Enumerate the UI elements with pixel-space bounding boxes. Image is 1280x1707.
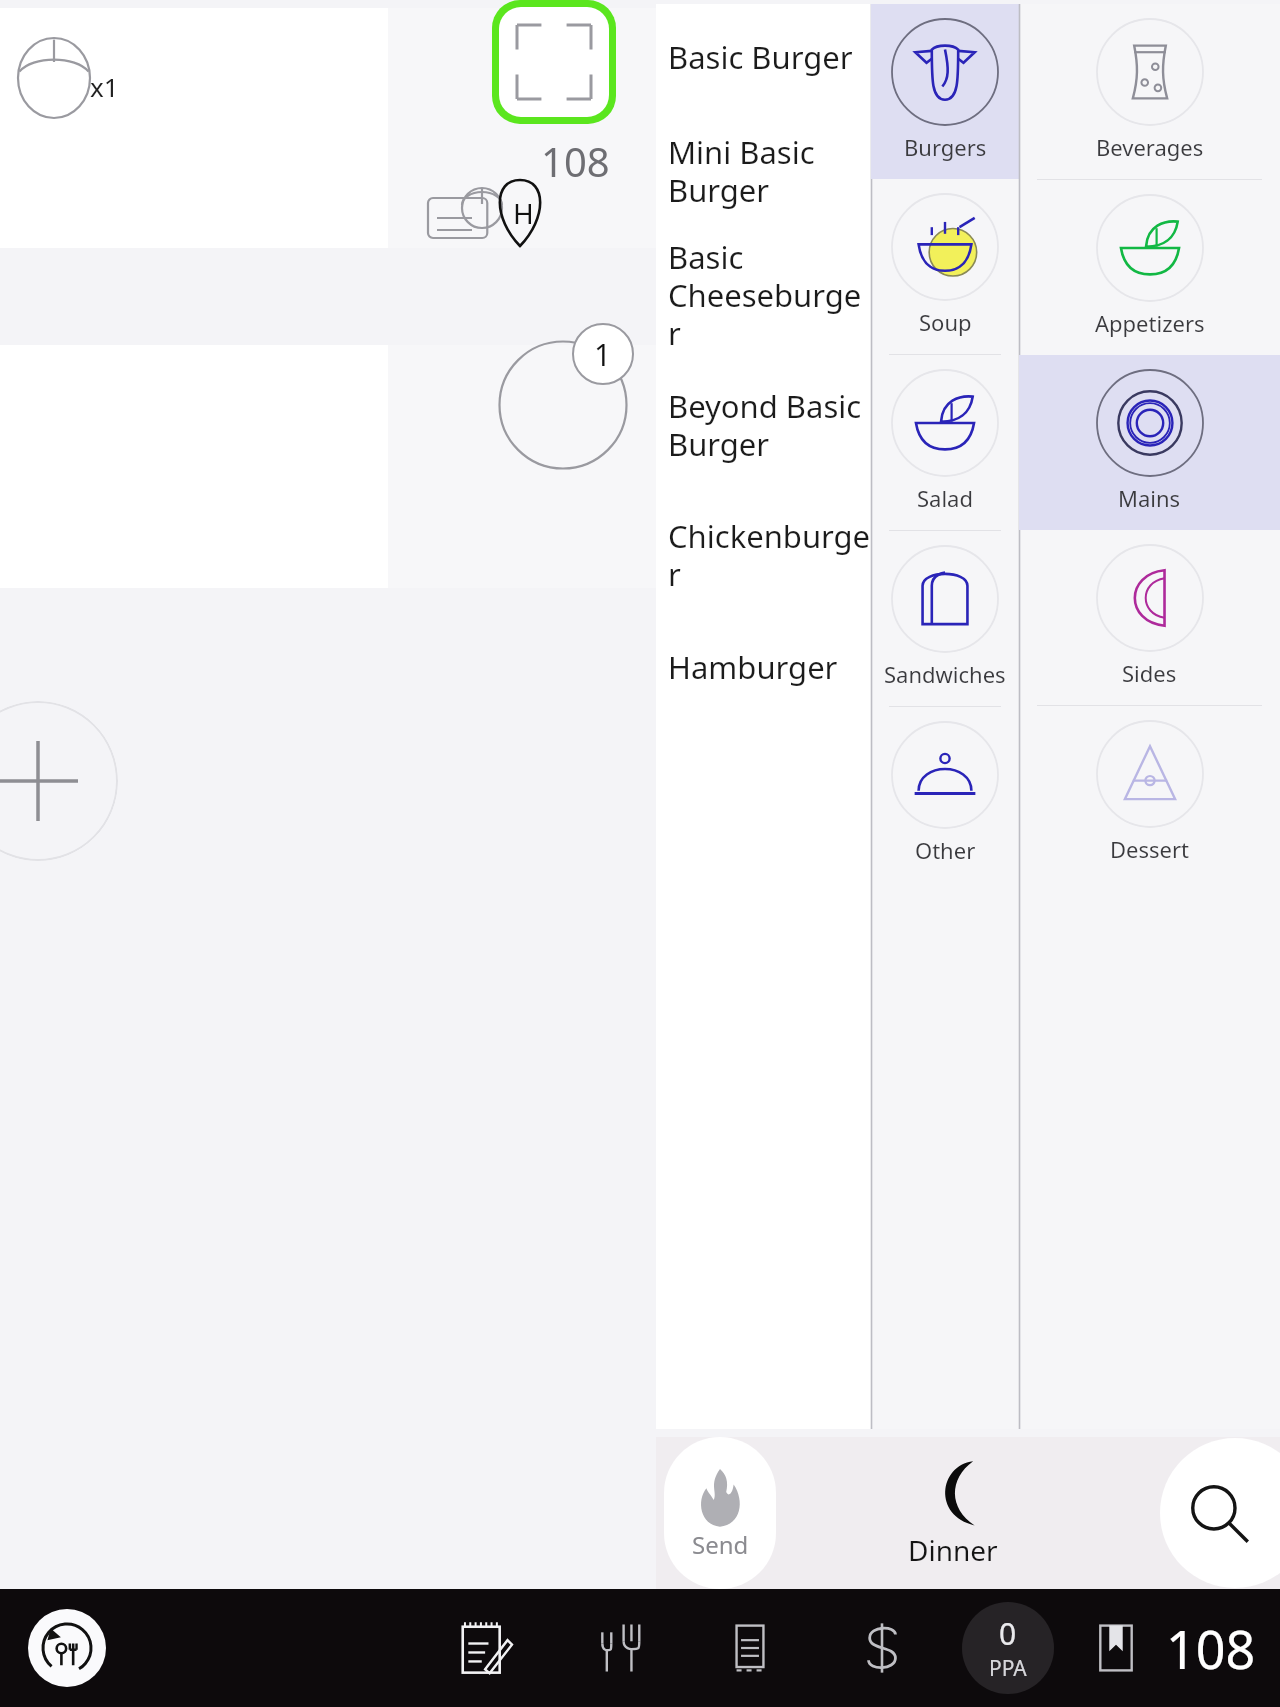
staticText: Sides [1122, 658, 1177, 688]
staticText: Mains [1118, 483, 1181, 513]
button[interactable]: Sandwiches [871, 531, 1019, 706]
button[interactable]: Dessert [1019, 706, 1280, 881]
button[interactable]: Salad [871, 355, 1019, 530]
button[interactable]: Add item [0, 701, 118, 861]
staticText: Sandwiches [884, 659, 1006, 689]
button[interactable]: x1 [0, 8, 656, 248]
button[interactable]: Burgers [871, 4, 1019, 179]
staticText: Basic Burger [668, 36, 853, 78]
button[interactable]: Seat H [492, 180, 548, 246]
staticText: H [513, 194, 534, 232]
staticText: Soup [919, 307, 972, 337]
staticText: x1 [90, 69, 119, 104]
staticText: Dessert [1110, 834, 1189, 864]
button[interactable]: 0 [962, 1602, 1054, 1694]
button[interactable]: Soup [871, 179, 1019, 354]
staticText: Chickenburger [668, 515, 871, 595]
staticText: Hamburger [668, 646, 838, 688]
staticText: Beverages [1096, 132, 1204, 162]
button[interactable]: Beverages [1019, 4, 1280, 179]
staticText: Mini Basic Burger [668, 131, 815, 211]
staticText: 1 [594, 334, 612, 375]
button[interactable]: Hamburger [668, 617, 871, 717]
button[interactable]: 1 [0, 345, 656, 588]
staticText: 0 [999, 1613, 1017, 1654]
button[interactable]: Mains [1019, 355, 1280, 530]
staticText: Dinner [908, 1531, 998, 1569]
staticText: Appetizers [1095, 308, 1205, 338]
button[interactable]: Bookmark [1080, 1612, 1152, 1684]
button[interactable]: Sides [1019, 530, 1280, 705]
staticText: Salad [917, 483, 973, 513]
button[interactable]: Basic Cheeseburger [668, 233, 871, 357]
staticText: PPA [989, 1654, 1027, 1683]
button[interactable]: Cutlery [582, 1612, 654, 1684]
staticText: Basic Cheeseburger [668, 236, 871, 354]
button[interactable]: Appetizers [1019, 180, 1280, 355]
button[interactable]: Send [664, 1437, 776, 1589]
staticText: Send [692, 1528, 749, 1561]
button[interactable]: Beyond Basic Burger [668, 357, 871, 493]
button[interactable]: Mini Basic Burger [668, 109, 871, 233]
staticText: Burgers [904, 132, 987, 162]
button[interactable]: Course [428, 184, 504, 240]
button[interactable]: Selected seat [499, 7, 609, 117]
staticText: Other [915, 835, 976, 865]
staticText: Beyond Basic Burger [668, 385, 862, 465]
button[interactable]: Chickenburger [668, 493, 871, 617]
button[interactable]: Payment [846, 1612, 918, 1684]
button[interactable]: Other [871, 707, 1019, 882]
button[interactable]: Basic Burger [668, 4, 871, 109]
button[interactable]: Search [1160, 1438, 1280, 1588]
staticText: 108 [1166, 1613, 1256, 1684]
staticText: 108 [541, 134, 610, 188]
button[interactable]: Receipt [714, 1612, 786, 1684]
button[interactable]: Reorder [28, 1609, 106, 1687]
button[interactable]: Notes [448, 1612, 520, 1684]
button[interactable]: Dinner [843, 1437, 1063, 1589]
